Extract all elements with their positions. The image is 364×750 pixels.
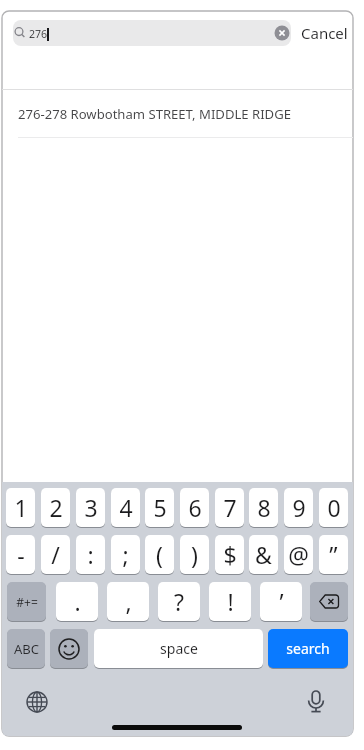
staticText: 6 [188, 492, 202, 523]
button[interactable]: ? [158, 582, 200, 621]
staticText: 8 [257, 492, 271, 523]
button[interactable]: / [41, 535, 70, 574]
staticText: ; [122, 539, 129, 570]
staticText: 276-278 Rowbotham STREET, MIDDLE RIDGE [18, 105, 291, 123]
button[interactable]: search [268, 629, 348, 668]
button[interactable]: 276-278 Rowbotham STREET, MIDDLE RIDGE [3, 90, 353, 138]
button[interactable]: @ [284, 535, 313, 574]
button[interactable]: 3 [76, 488, 105, 527]
staticText: $ [223, 539, 237, 570]
button[interactable]: #+= [7, 582, 46, 621]
staticText: ) [191, 539, 198, 570]
button[interactable]: : [76, 535, 105, 574]
button[interactable] [305, 690, 327, 713]
staticText: 2 [49, 492, 63, 523]
button[interactable]: 8 [249, 488, 278, 527]
staticText: 5 [153, 492, 167, 523]
button[interactable]: 7 [215, 488, 244, 527]
staticText: . [74, 586, 81, 617]
staticText: space [160, 639, 198, 658]
staticText: : [87, 539, 94, 570]
staticText: ! [227, 586, 234, 617]
button[interactable]: Cancel [298, 20, 350, 46]
button[interactable] [50, 629, 88, 668]
button[interactable] [310, 582, 348, 621]
staticText: , [125, 586, 132, 617]
staticText: ’ [279, 586, 284, 617]
staticText: - [17, 539, 25, 570]
button[interactable]: 4 [111, 488, 140, 527]
button[interactable]: 6 [180, 488, 209, 527]
button[interactable]: 5 [145, 488, 174, 527]
staticText: @ [288, 539, 309, 570]
staticText: 3 [84, 492, 98, 523]
button[interactable]: ’ [260, 582, 302, 621]
button[interactable] [26, 691, 48, 713]
staticText: 4 [119, 492, 133, 523]
staticText: ABC [14, 640, 39, 658]
staticText: ( [156, 539, 163, 570]
staticText: ? [174, 586, 184, 617]
button[interactable]: . [56, 582, 98, 621]
button[interactable]: $ [215, 535, 244, 574]
button[interactable]: 0 [319, 488, 348, 527]
button[interactable]: , [107, 582, 149, 621]
staticText: Cancel [301, 23, 348, 43]
button[interactable]: & [249, 535, 278, 574]
button[interactable]: 1 [6, 488, 35, 527]
button[interactable]: ; [111, 535, 140, 574]
button[interactable]: ) [180, 535, 209, 574]
staticText: 9 [292, 492, 306, 523]
staticText: 7 [223, 492, 237, 523]
staticText: ” [329, 539, 338, 570]
staticText: 276 [29, 27, 48, 41]
staticText: search [286, 639, 330, 658]
button[interactable]: 2 [41, 488, 70, 527]
button[interactable]: ABC [7, 629, 45, 668]
button[interactable]: 9 [284, 488, 313, 527]
staticText: #+= [16, 594, 38, 610]
staticText: 1 [14, 492, 28, 523]
button[interactable]: - [6, 535, 35, 574]
button[interactable]: space [94, 629, 263, 668]
button[interactable]: ” [319, 535, 348, 574]
staticText: / [51, 539, 60, 570]
button[interactable] [13, 20, 291, 46]
staticText: 0 [327, 492, 341, 523]
staticText: & [255, 539, 272, 570]
button[interactable]: ! [209, 582, 251, 621]
button[interactable]: ( [145, 535, 174, 574]
